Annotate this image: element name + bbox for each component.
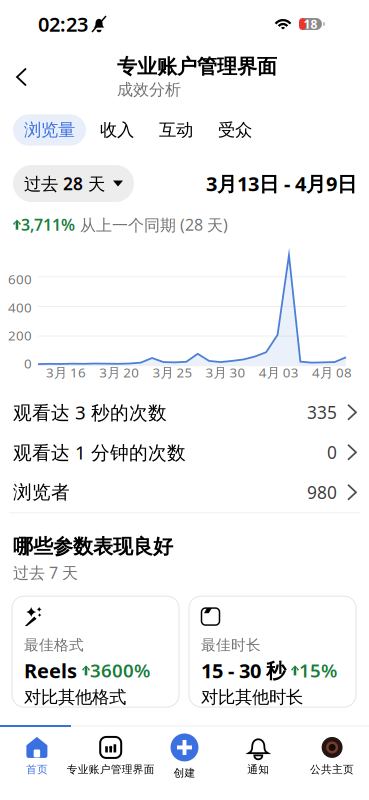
staticText: 成效分析 [117,80,181,100]
staticText: 对比其他格式 [24,687,126,708]
staticText: 400 [8,298,32,316]
button[interactable]: 浏览量 [13,114,86,146]
staticText: 600 [8,270,32,288]
button[interactable]: 首页 [0,727,74,775]
staticText: 互动 [159,119,193,141]
staticText: 4月 03 [259,363,299,381]
staticText: 通知 [247,763,269,776]
staticText: 15% [299,658,337,683]
staticText: 过去 7 天 [13,562,78,583]
button[interactable]: 收入 [89,114,145,146]
staticText: 收入 [100,119,134,141]
staticText: 980 [307,481,337,504]
staticText: 观看达 3 秒的次数 [13,400,167,425]
staticText: 哪些参数表现良好 [13,534,173,559]
staticText: 最佳时长 [201,636,261,654]
staticText: 公共主页 [310,763,354,776]
staticText: 专业账户管理界面 [117,54,277,79]
staticText: 0 [24,355,32,372]
staticText: 3月 30 [206,363,246,381]
staticText: Reels [24,657,77,684]
button[interactable]: 最佳时长 [189,596,356,707]
staticText: 观看达 1 分钟的次数 [13,440,186,465]
button[interactable]: 专业账户管理界面 [74,727,148,775]
staticText: 对比其他时长 [201,687,303,708]
button[interactable]: 受众 [207,114,263,146]
staticText: 3月 16 [46,363,86,381]
staticText: 15 - 30 秒 [201,657,286,684]
staticText: 最佳格式 [24,636,84,654]
button[interactable]: 通知 [221,727,295,775]
staticText: 200 [8,326,32,344]
staticText: 浏览量 [24,119,75,141]
button[interactable]: 返回 [0,57,38,96]
staticText: 335 [307,401,337,424]
staticText: 18 [303,16,317,32]
button[interactable]: 过去 28 天 [13,165,134,202]
staticText: 3600% [90,658,150,683]
staticText: 3月13日 - 4月9日 [206,170,357,197]
staticText: 专业账户管理界面 [67,763,155,776]
staticText: 4月 08 [312,363,352,381]
button[interactable]: 观看达 3 秒的次数 [0,392,369,432]
staticText: 02:23 [38,11,88,37]
staticText: 受众 [218,119,252,141]
staticText: 浏览者 [13,481,70,504]
staticText: 3月 25 [152,363,192,381]
staticText: 3月 20 [99,363,139,381]
button[interactable]: 创建 [148,727,221,775]
button[interactable]: 浏览者 [0,472,369,512]
staticText: 3,711% [21,214,75,235]
staticText: 过去 28 天 [24,172,105,195]
button[interactable]: 互动 [148,114,204,146]
button[interactable]: 最佳格式 [12,596,179,707]
button[interactable]: 公共主页 [295,727,369,775]
button[interactable]: 观看达 1 分钟的次数 [0,432,369,472]
staticText: 首页 [26,763,48,776]
staticText: 从上一个同期 (28 天) [75,214,228,235]
staticText: 0 [327,441,337,464]
staticText: 创建 [173,766,195,779]
